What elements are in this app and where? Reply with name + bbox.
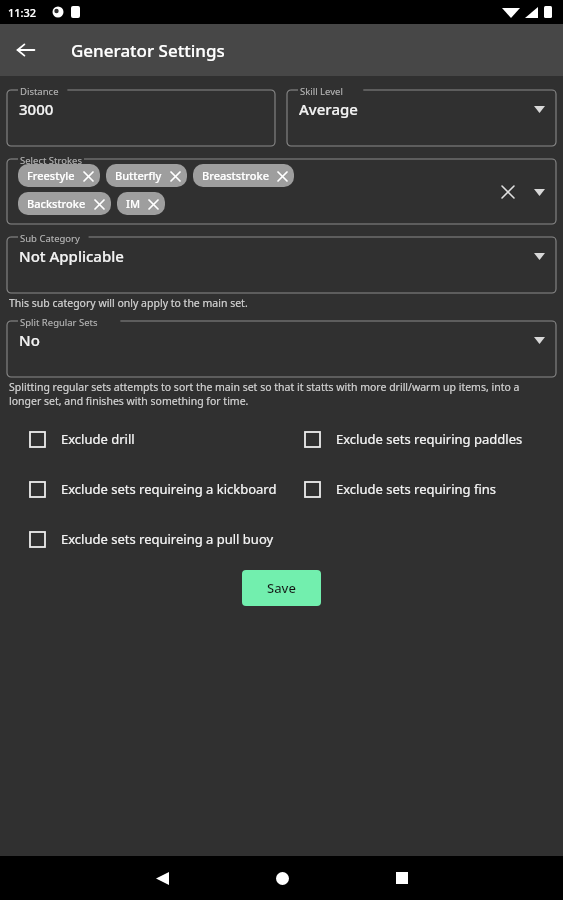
button[interactable]: IM <box>117 192 165 215</box>
button[interactable]: Exclude drill <box>6 430 281 448</box>
staticText: No <box>19 330 40 350</box>
staticText: Distance <box>20 85 59 98</box>
staticText: Skill Level <box>300 85 343 98</box>
button[interactable]: Back <box>138 856 186 900</box>
button[interactable]: Back <box>6 30 46 70</box>
staticText: Exclude sets requiring paddles <box>336 430 523 448</box>
staticText: Splitting regular sets attempts to sort … <box>9 380 553 408</box>
staticText: Backstroke <box>27 196 86 211</box>
staticText: Average <box>299 99 358 119</box>
staticText: This sub category will only apply to the… <box>9 296 248 310</box>
button[interactable]: Home <box>258 856 306 900</box>
button[interactable]: Exclude sets requiring paddles <box>281 430 557 448</box>
staticText: Exclude drill <box>61 430 135 448</box>
other: Expand Sub Category <box>532 249 546 263</box>
staticText: Select Strokes <box>20 154 82 167</box>
button[interactable]: No <box>7 321 556 377</box>
button[interactable]: Butterfly <box>106 164 187 187</box>
button[interactable]: Average <box>287 90 556 146</box>
button[interactable]: Save <box>242 570 321 606</box>
button[interactable]: Expand strokes <box>531 184 547 200</box>
staticText: Sub Category <box>20 232 80 245</box>
other: Expand Split Regular Sets <box>532 333 546 347</box>
other: Expand Skill Level <box>532 102 546 116</box>
staticText: Breaststroke <box>202 168 269 183</box>
button[interactable]: Backstroke <box>18 192 111 215</box>
staticText: Generator Settings <box>71 39 225 62</box>
button[interactable]: Breaststroke <box>193 164 294 187</box>
button[interactable]: Clear strokes <box>497 181 519 203</box>
staticText: IM <box>126 196 140 211</box>
staticText: 3000 <box>19 99 54 119</box>
button[interactable]: Exclude sets requireing a pull buoy <box>6 530 281 548</box>
button[interactable]: Not Applicable <box>7 237 556 293</box>
staticText: Save <box>267 579 296 597</box>
staticText: Freestyle <box>27 168 75 183</box>
button[interactable]: Freestyle <box>7 159 556 224</box>
button[interactable]: Recent apps <box>378 856 426 900</box>
button[interactable]: Exclude sets requireing a kickboard <box>6 480 281 498</box>
staticText: Exclude sets requireing a kickboard <box>61 480 277 498</box>
button[interactable]: Exclude sets requiring fins <box>281 480 557 498</box>
staticText: Exclude sets requiring fins <box>336 480 497 498</box>
button[interactable]: 3000 <box>7 90 275 146</box>
staticText: Not Applicable <box>19 246 124 266</box>
staticText: 11:32 <box>8 5 37 20</box>
button[interactable]: Freestyle <box>18 164 100 187</box>
staticText: Exclude sets requireing a pull buoy <box>61 530 274 548</box>
staticText: Split Regular Sets <box>20 316 98 329</box>
staticText: Butterfly <box>115 168 162 183</box>
